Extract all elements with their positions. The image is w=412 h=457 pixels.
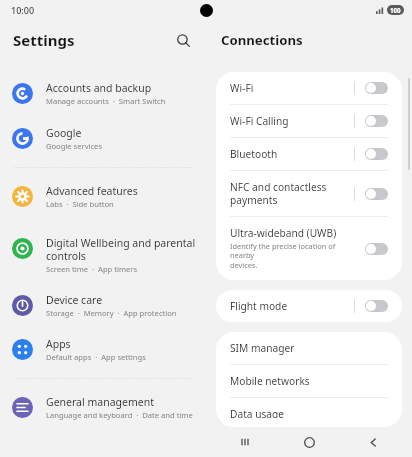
staticText: 10:00 [11,4,35,16]
staticText: Wi-Fi [230,81,254,95]
staticText: Data usage [230,407,285,418]
staticText: Settings [13,30,75,50]
button[interactable]: Bluetooth [216,138,402,170]
staticText: Digital Wellbeing and parental controls [46,236,196,263]
staticText: Advanced features [46,184,138,198]
button[interactable]: Recent apps [220,427,270,457]
staticText: Device care [46,293,103,307]
button[interactable]: Back [348,427,398,457]
staticText: Google services [46,141,103,151]
staticText: Language and keyboard · Date and time [46,410,193,420]
staticText: Manage accounts · Smart Switch [46,96,166,106]
button[interactable]: General management [0,388,206,427]
staticText: Mobile networks [230,374,310,388]
staticText: Screen time · App timers [46,264,138,274]
button[interactable]: Device care [0,286,206,325]
staticText: Storage · Memory · App protection [46,308,177,318]
staticText: Flight mode [230,299,288,313]
button[interactable]: Data usage [216,398,402,427]
staticText: Apps [46,337,71,351]
button[interactable]: Mobile networks [216,365,402,397]
button[interactable]: Home [284,427,334,457]
staticText: Identify the precise location of nearby … [230,241,354,271]
staticText: Connections [221,31,303,49]
button[interactable]: Flight mode [216,290,402,322]
button[interactable]: Digital Wellbeing and parental controls [0,229,206,281]
staticText: Default apps · App settings [46,352,146,362]
button[interactable]: Apps [0,330,206,369]
button[interactable]: Ultra-wideband (UWB) [216,217,402,280]
button[interactable]: NFC and contactless payments [216,171,402,216]
button[interactable]: Wi-Fi Calling [216,105,402,137]
staticText: 100 [390,6,401,14]
button[interactable]: Wi-Fi [216,72,402,104]
staticText: General management [46,395,154,409]
button[interactable]: Accounts and backup [0,74,206,113]
staticText: Bluetooth [230,147,278,161]
staticText: Labs · Side button [46,199,114,209]
button[interactable]: Search settings [170,27,196,53]
staticText: SIM manager [230,341,295,355]
button[interactable]: Advanced features [0,177,206,216]
button[interactable]: SIM manager [216,332,402,364]
staticText: NFC and contactless payments [230,180,354,207]
staticText: Ultra-wideband (UWB) [230,226,337,240]
staticText: Wi-Fi Calling [230,114,289,128]
staticText: Accounts and backup [46,81,152,95]
staticText: Google [46,126,82,140]
button[interactable]: Google [0,119,206,158]
